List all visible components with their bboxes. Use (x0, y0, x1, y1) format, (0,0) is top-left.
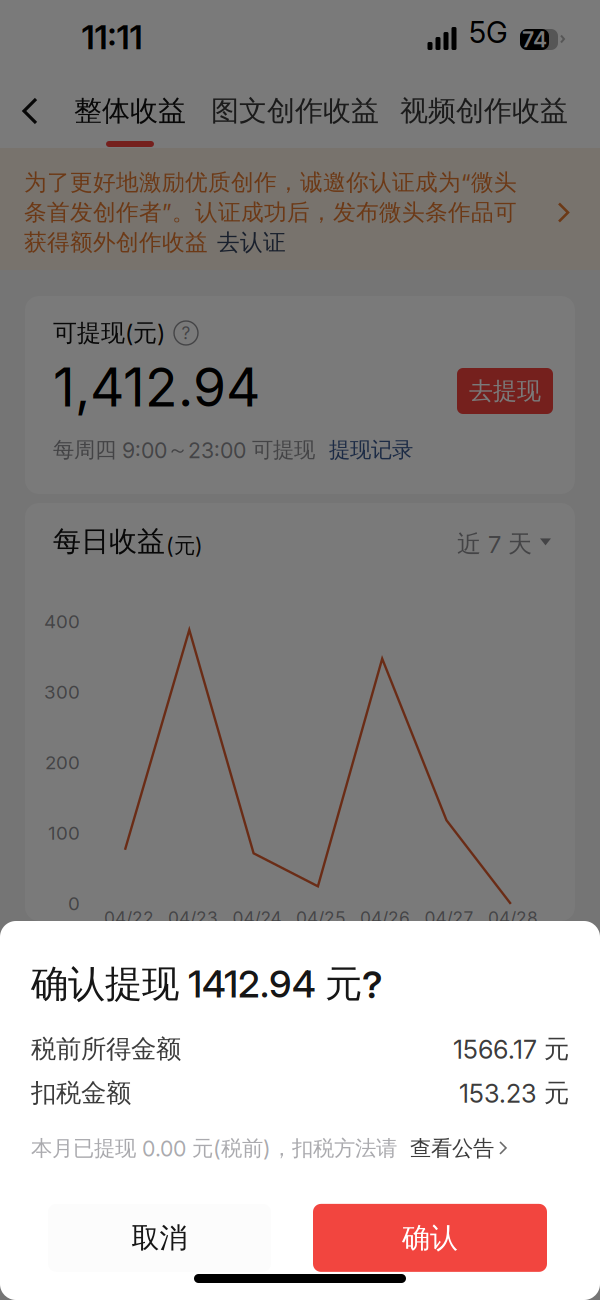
staticText: 为了更好地激励优质创作，诚邀你认证成为“微头 (24, 168, 517, 197)
button[interactable]: 近 7 天 (457, 529, 551, 559)
button[interactable]: 说明 (174, 321, 198, 345)
staticText: 整体收益 (74, 93, 186, 129)
staticText: 近 7 天 (457, 529, 532, 559)
button[interactable]: 图文创作收益 (211, 74, 379, 148)
button[interactable]: 去提现 (457, 368, 553, 414)
staticText: 04/27 (424, 907, 473, 928)
staticText: 11:11 (81, 17, 142, 57)
staticText: 04/25 (296, 907, 346, 928)
staticText: 0 (68, 892, 80, 915)
staticText: 查看公告 (410, 1135, 494, 1162)
staticText: 1412.94 (179, 961, 325, 1007)
staticText: 元? (325, 960, 383, 1007)
staticText: 1566.17 元 (453, 1033, 569, 1065)
button[interactable]: 整体收益 (71, 74, 189, 148)
staticText: 300 (44, 681, 80, 703)
staticText: 每周四 9:00～23:00 可提现 (53, 437, 315, 463)
staticText: 04/28 (488, 907, 538, 928)
button[interactable]: 确认 (313, 1204, 547, 1272)
staticText: 获得额外创作收益 (24, 228, 208, 257)
staticText: 每日收益 (53, 524, 165, 559)
staticText: 条首发创作者”。认证成功后，发布微头条作品可 (24, 198, 517, 227)
staticText: 1,412.94 (53, 355, 260, 419)
staticText: 74 (522, 27, 547, 52)
staticText: 确认 (402, 1220, 458, 1255)
staticText: 视频创作收益 (400, 93, 568, 129)
button[interactable]: 取消 (48, 1204, 271, 1272)
staticText: 扣税金额 (31, 1077, 131, 1109)
staticText: 本月已提现 0.00 元(税前)，扣税方法请 (31, 1135, 397, 1162)
staticText: 153.23 元 (459, 1077, 569, 1109)
staticText: 04/23 (168, 907, 218, 928)
staticText: 提现记录 (329, 437, 413, 463)
staticText: 400 (44, 610, 80, 633)
staticText: 确认提现 (31, 960, 179, 1007)
staticText: 取消 (131, 1220, 187, 1255)
staticText: 税前所得金额 (31, 1033, 181, 1065)
staticText: 可提现(元) (53, 318, 165, 348)
staticText: 去认证 (217, 228, 286, 257)
staticText: 200 (45, 751, 80, 774)
staticText: 04/26 (360, 907, 410, 928)
button[interactable]: 视频创作收益 (400, 74, 568, 148)
staticText: 04/22 (104, 907, 154, 928)
staticText: 100 (48, 822, 80, 844)
staticText: ? (181, 322, 190, 343)
staticText: 5G (469, 14, 508, 50)
staticText: 图文创作收益 (211, 93, 379, 129)
staticText: 去提现 (469, 376, 541, 406)
button[interactable]: 返回 (0, 74, 60, 148)
staticText: (元) (166, 532, 203, 559)
button[interactable]: 查看公告 (410, 1135, 508, 1162)
staticText: 04/24 (232, 907, 281, 928)
button[interactable]: 提现记录 (329, 437, 413, 463)
button[interactable]: 为了更好地激励优质创作，诚邀你认证成为“微头 (0, 148, 600, 270)
